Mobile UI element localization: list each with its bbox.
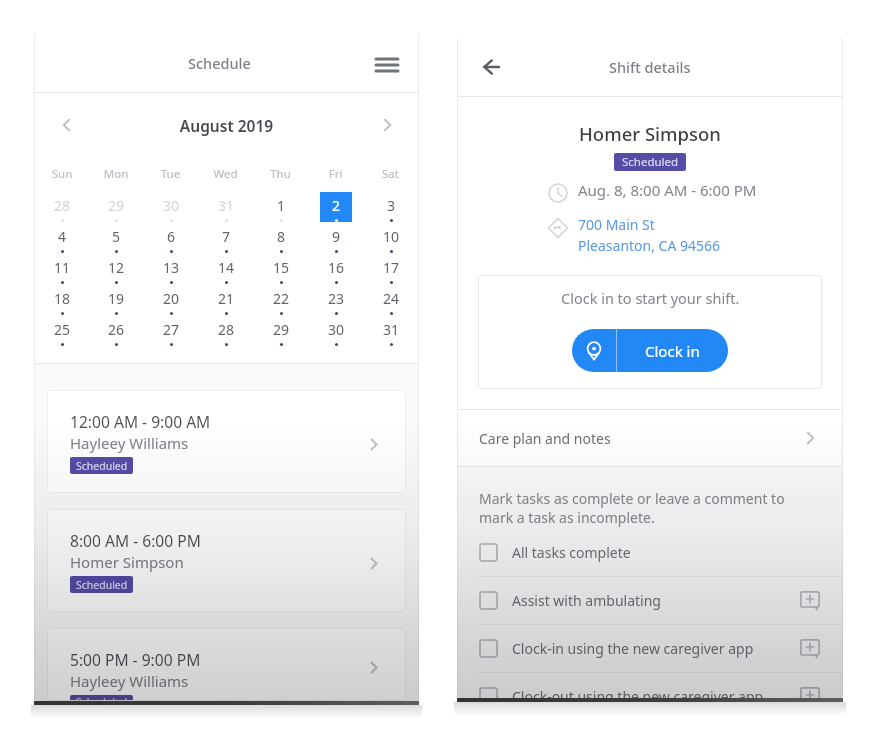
staticText: Clock-out using the new caregiver app: [512, 687, 764, 698]
staticText: Mon: [89, 166, 143, 182]
staticText: All tasks complete: [512, 543, 631, 562]
staticText: 9: [332, 227, 341, 246]
button[interactable]: Toggle All tasks complete: [479, 543, 498, 562]
staticText: Clock in: [645, 341, 700, 361]
button[interactable]: 1: [265, 192, 297, 222]
staticText: 29: [108, 196, 125, 215]
staticText: 8:00 AM - 6:00 PM: [70, 530, 201, 551]
staticText: Hayleey Williams: [70, 671, 189, 691]
button[interactable]: 7: [210, 223, 242, 253]
staticText: 1: [277, 196, 286, 215]
staticText: 31: [383, 320, 400, 339]
staticText: Clock in to start your shift.: [561, 288, 740, 308]
button[interactable]: Care plan and notes: [458, 410, 842, 466]
button[interactable]: 31: [210, 192, 242, 222]
button[interactable]: 25: [46, 316, 78, 346]
button[interactable]: 19: [100, 285, 132, 315]
staticText: Tue: [143, 166, 198, 182]
button[interactable]: Previous month: [35, 108, 97, 142]
button[interactable]: Toggle All tasks complete: [458, 529, 842, 576]
button[interactable]: 20: [155, 285, 187, 315]
button[interactable]: Next month: [356, 108, 418, 142]
button[interactable]: 14: [210, 254, 242, 284]
button[interactable]: 3: [375, 192, 407, 222]
button[interactable]: 27: [155, 316, 187, 346]
staticText: 22: [273, 289, 290, 308]
staticText: 6: [167, 227, 176, 246]
staticText: 28: [218, 320, 235, 339]
staticText: 18: [54, 289, 71, 308]
button[interactable]: 10: [375, 223, 407, 253]
staticText: Homer Simpson: [70, 552, 184, 572]
button[interactable]: 22: [265, 285, 297, 315]
button[interactable]: 29: [265, 316, 297, 346]
button[interactable]: 8: [265, 223, 297, 253]
button[interactable]: 31: [375, 316, 407, 346]
button[interactable]: 12: [100, 254, 132, 284]
button[interactable]: Toggle Assist with ambulating: [479, 591, 498, 610]
button[interactable]: Toggle Clock-in using the new caregiver …: [479, 639, 498, 658]
button[interactable]: Add comment: [798, 637, 822, 661]
staticText: 19: [108, 289, 125, 308]
staticText: 30: [163, 196, 180, 215]
staticText: 11: [54, 258, 71, 277]
staticText: Care plan and notes: [479, 429, 611, 448]
button[interactable]: 21: [210, 285, 242, 315]
button[interactable]: 15: [265, 254, 297, 284]
button[interactable]: 29: [100, 192, 132, 222]
staticText: 26: [108, 320, 125, 339]
staticText: Homer Simpson: [579, 121, 721, 146]
staticText: 5:00 PM - 9:00 PM: [70, 649, 201, 670]
staticText: 27: [163, 320, 180, 339]
staticText: 12:00 AM - 9:00 AM: [70, 411, 211, 432]
staticText: 7: [222, 227, 231, 246]
button[interactable]: 30: [155, 192, 187, 222]
button[interactable]: Clock in: [572, 329, 728, 372]
button[interactable]: 18: [46, 285, 78, 315]
staticText: Assist with ambulating: [512, 591, 661, 610]
button[interactable]: Toggle Clock-out using the new caregiver…: [479, 687, 498, 698]
button[interactable]: 23: [320, 285, 352, 315]
staticText: 23: [328, 289, 345, 308]
button[interactable]: Toggle Assist with ambulating: [458, 577, 842, 624]
staticText: Scheduled: [76, 459, 128, 473]
staticText: 17: [383, 258, 400, 277]
staticText: 25: [54, 320, 71, 339]
staticText: Pleasanton, CA 94566: [578, 236, 721, 255]
staticText: Fri: [308, 166, 363, 182]
button[interactable]: Toggle Clock-in using the new caregiver …: [458, 625, 842, 672]
button[interactable]: 24: [375, 285, 407, 315]
button[interactable]: 30: [320, 316, 352, 346]
button[interactable]: Add comment: [798, 685, 822, 698]
staticText: 15: [273, 258, 290, 277]
staticText: 10: [383, 227, 400, 246]
button[interactable]: Add comment: [798, 589, 822, 613]
button[interactable]: Back: [472, 48, 510, 86]
button[interactable]: 5: [100, 223, 132, 253]
button[interactable]: 26: [100, 316, 132, 346]
button[interactable]: 12:00 AM - 9:00 AM: [47, 390, 406, 493]
staticText: 3: [387, 196, 396, 215]
staticText: 30: [328, 320, 345, 339]
button[interactable]: 16: [320, 254, 352, 284]
button[interactable]: 2: [320, 192, 352, 222]
button[interactable]: 5:00 PM - 9:00 PM: [47, 628, 406, 701]
button[interactable]: 8:00 AM - 6:00 PM: [47, 509, 406, 612]
button[interactable]: Toggle Clock-out using the new caregiver…: [458, 673, 842, 698]
button[interactable]: 13: [155, 254, 187, 284]
staticText: 4: [58, 227, 67, 246]
button[interactable]: 28: [46, 192, 78, 222]
button[interactable]: 28: [210, 316, 242, 346]
button[interactable]: 6: [155, 223, 187, 253]
staticText: Clock-in using the new caregiver app: [512, 639, 754, 658]
button[interactable]: 17: [375, 254, 407, 284]
staticText: Thu: [253, 166, 308, 182]
staticText: Wed: [198, 166, 253, 182]
staticText: August 2019: [97, 115, 356, 136]
button[interactable]: 11: [46, 254, 78, 284]
staticText: 31: [218, 196, 235, 215]
staticText: 20: [163, 289, 180, 308]
button[interactable]: 4: [46, 223, 78, 253]
button[interactable]: 9: [320, 223, 352, 253]
button[interactable]: Menu: [367, 45, 407, 85]
